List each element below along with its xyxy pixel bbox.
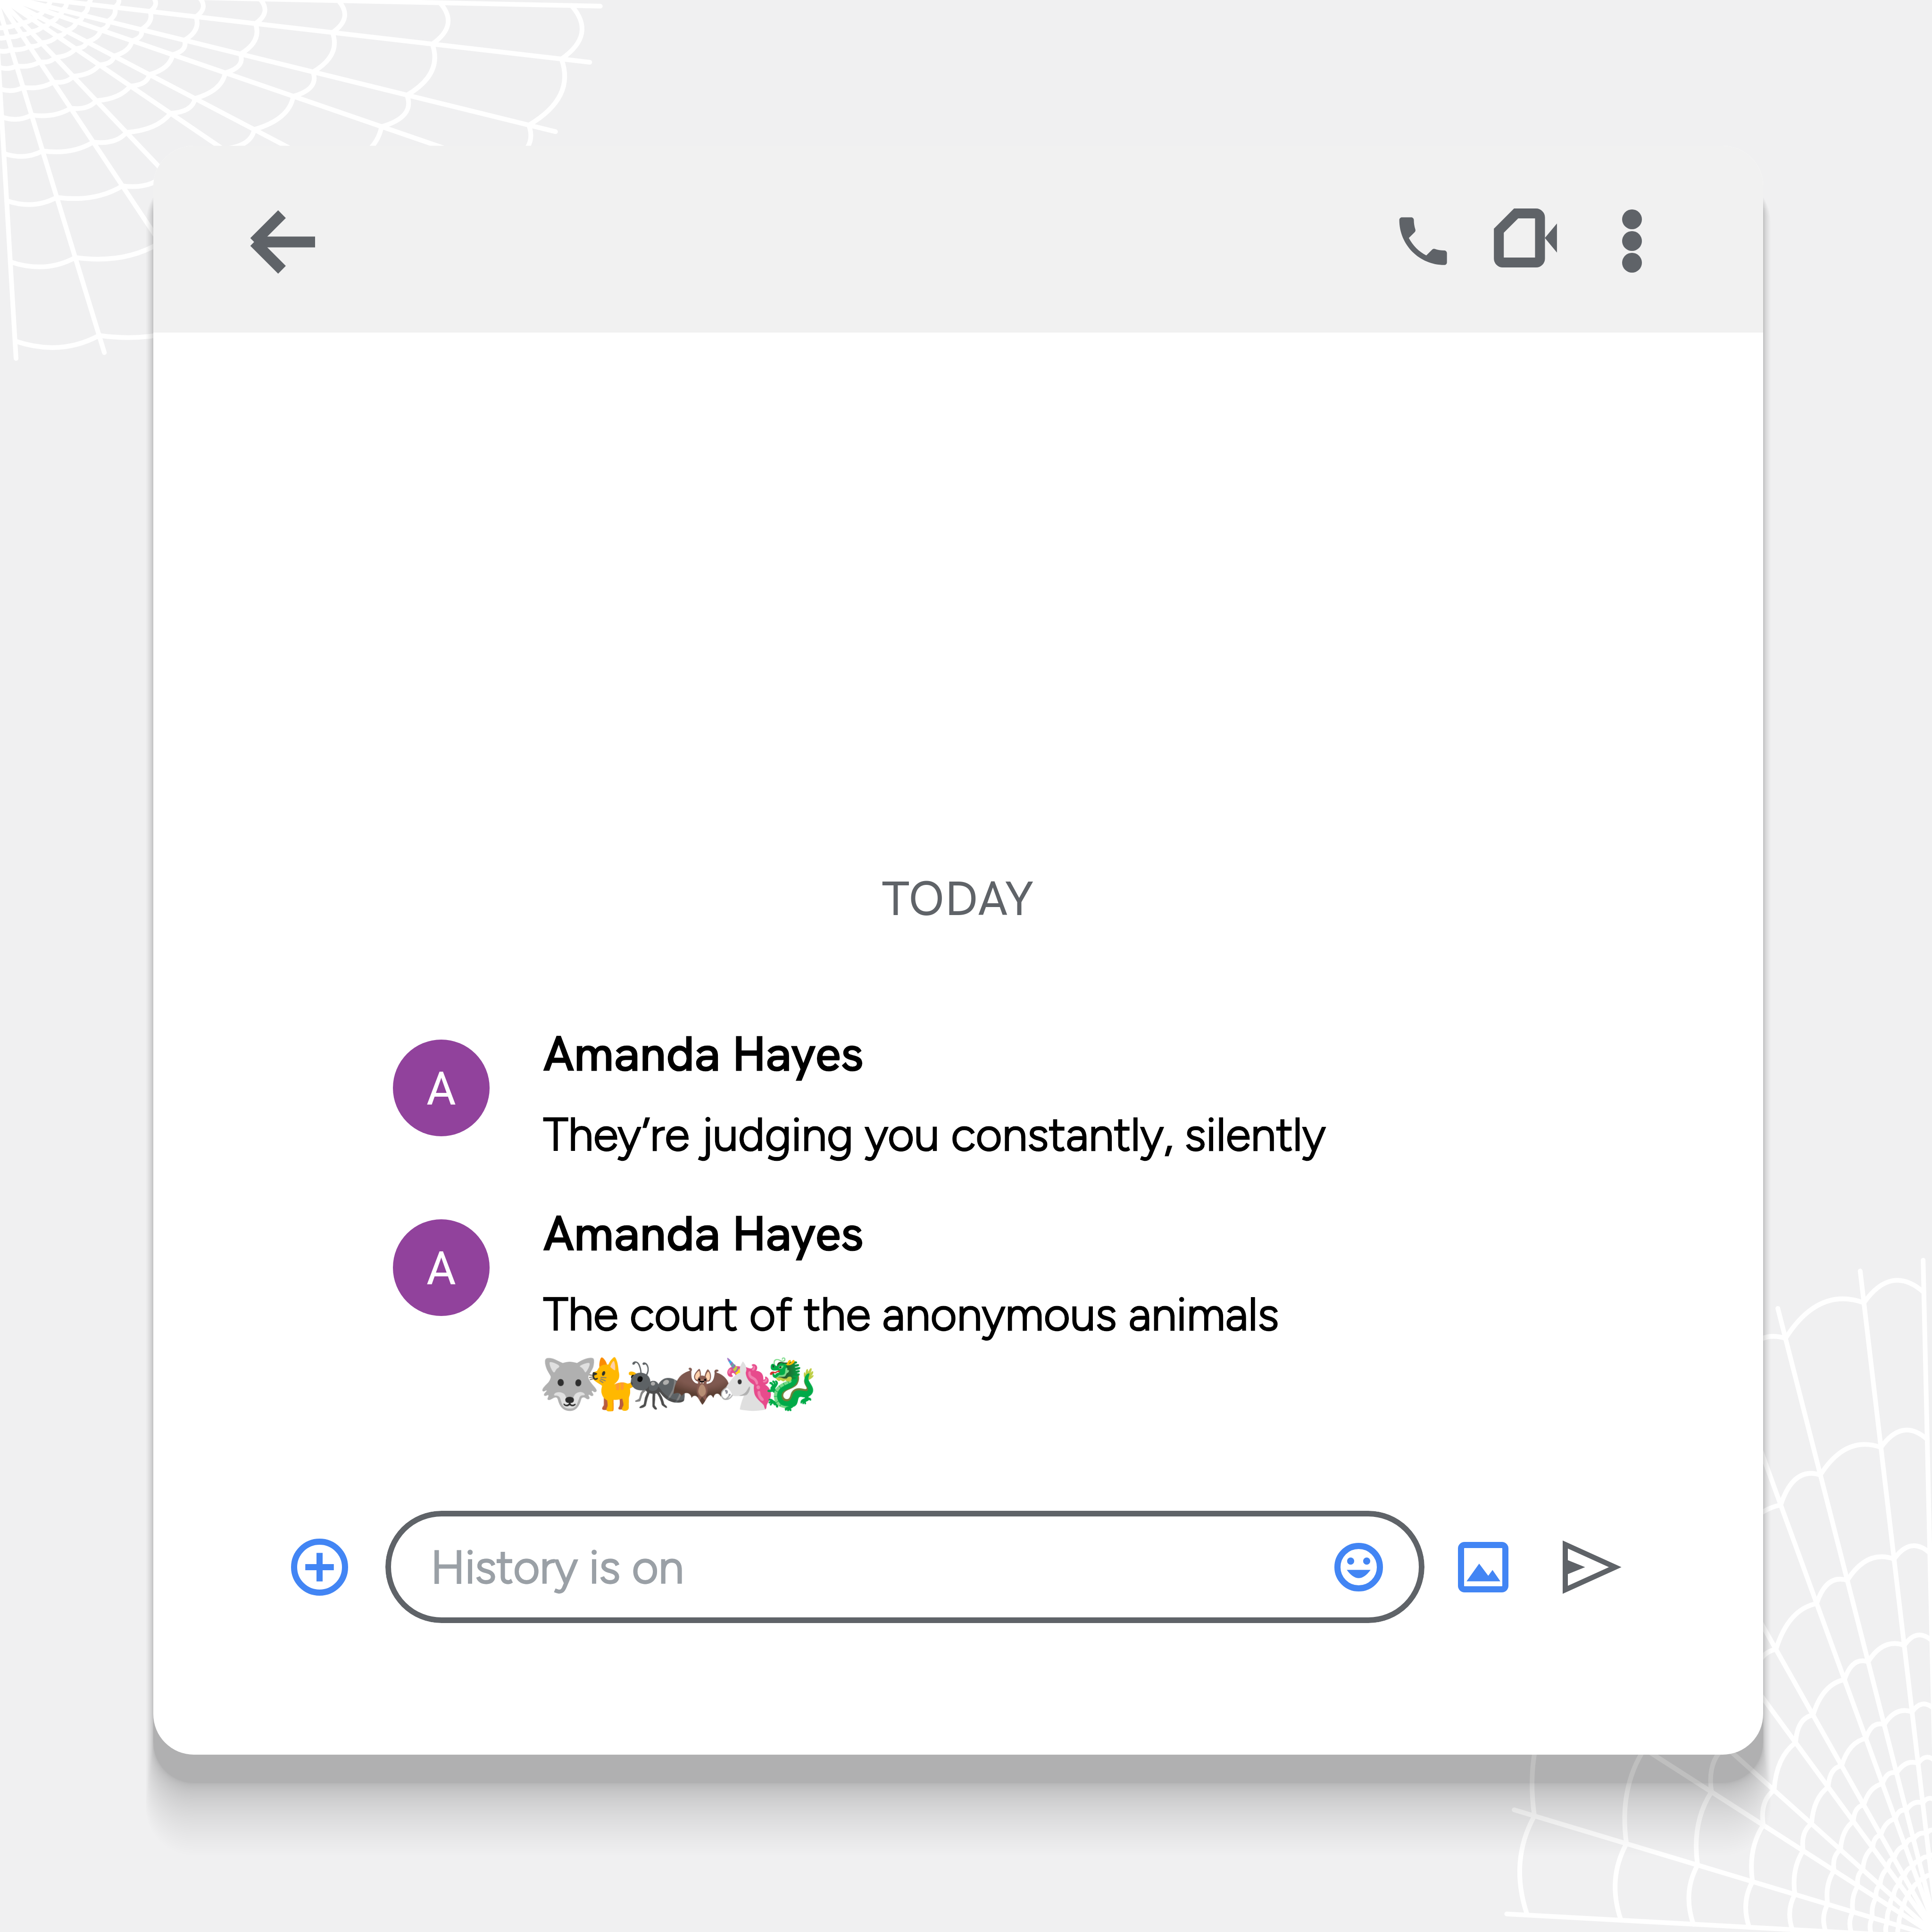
button[interactable]: Call <box>1370 189 1475 293</box>
button[interactable]: Send image <box>1445 1529 1521 1605</box>
staticText: A <box>426 1058 457 1118</box>
button[interactable]: More options <box>1580 189 1684 293</box>
staticText: History is on <box>431 1540 684 1594</box>
button[interactable]: Emoji <box>1325 1534 1391 1600</box>
staticText: A <box>426 1237 457 1298</box>
staticText: They’re judging you constantly, silently <box>543 1107 1326 1162</box>
button[interactable]: History is on <box>385 1511 1424 1623</box>
button[interactable]: Back <box>240 200 325 284</box>
staticText: Amanda Hayes <box>543 1202 864 1265</box>
button[interactable]: Add attachment <box>279 1527 359 1607</box>
button[interactable]: Send <box>1553 1529 1628 1605</box>
button[interactable]: Video call <box>1475 189 1580 293</box>
staticText: The court of the anonymous animals <box>543 1287 1279 1341</box>
staticText: Amanda Hayes <box>543 1022 864 1085</box>
staticText: 🐺🐈🐜🦇🦄🐉 <box>539 1356 804 1413</box>
staticText: TODAY <box>153 867 1763 930</box>
